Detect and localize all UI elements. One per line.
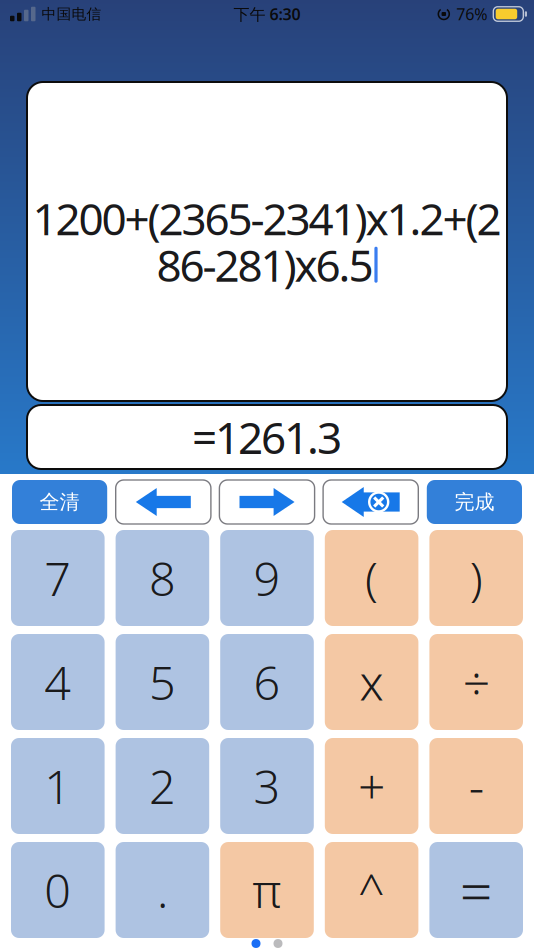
button[interactable]: ÷ bbox=[429, 634, 523, 730]
staticText: =1261.3 bbox=[192, 408, 342, 466]
staticText: 中国电信 bbox=[41, 5, 101, 23]
staticText: 3 bbox=[253, 755, 280, 817]
staticText: ÷ bbox=[463, 650, 490, 714]
button[interactable]: 3 bbox=[220, 738, 314, 834]
button[interactable]: 全清 bbox=[12, 480, 107, 524]
button[interactable]: + bbox=[325, 738, 418, 834]
staticText: 5 bbox=[149, 651, 176, 713]
staticText: 9 bbox=[253, 547, 280, 609]
staticText: 2 bbox=[149, 755, 176, 817]
staticText: 6 bbox=[253, 651, 280, 713]
staticText: ) bbox=[470, 547, 483, 609]
staticText: 7 bbox=[44, 547, 71, 609]
button[interactable]: 6 bbox=[220, 634, 314, 730]
button[interactable]: π bbox=[220, 842, 314, 938]
staticText: 4 bbox=[44, 651, 71, 713]
button[interactable]: 7 bbox=[11, 530, 105, 626]
button[interactable]: 0 bbox=[11, 842, 105, 938]
button[interactable]: 第 1 页 bbox=[251, 939, 260, 948]
button[interactable]: ( bbox=[325, 530, 418, 626]
staticText: ^ bbox=[358, 859, 385, 921]
staticText: . bbox=[157, 859, 168, 921]
button[interactable]: - bbox=[429, 738, 523, 834]
button[interactable]: 左移 bbox=[116, 480, 211, 524]
button[interactable]: x bbox=[325, 634, 418, 730]
button[interactable]: 8 bbox=[116, 530, 209, 626]
staticText: 全清 bbox=[40, 490, 80, 514]
button[interactable]: 右移 bbox=[219, 480, 315, 524]
button[interactable]: 2 bbox=[116, 738, 209, 834]
staticText: 1 bbox=[44, 755, 71, 817]
button[interactable]: ) bbox=[429, 530, 523, 626]
staticText: π bbox=[252, 859, 281, 921]
button[interactable]: = bbox=[429, 842, 523, 938]
staticText: 86-281)x6.5 bbox=[156, 235, 373, 294]
button[interactable]: 1 bbox=[11, 738, 105, 834]
button[interactable]: 4 bbox=[11, 634, 105, 730]
staticText: ( bbox=[365, 547, 378, 609]
button[interactable]: 第 2 页 bbox=[273, 939, 282, 948]
button[interactable]: 完成 bbox=[427, 480, 522, 524]
button[interactable]: ^ bbox=[325, 842, 418, 938]
staticText: 8 bbox=[149, 547, 176, 609]
button[interactable]: 9 bbox=[220, 530, 314, 626]
button[interactable]: . bbox=[116, 842, 209, 938]
staticText: + bbox=[358, 754, 385, 818]
staticText: 1200+(2365-2341)x1.2+(2 bbox=[32, 189, 501, 247]
staticText: - bbox=[469, 754, 484, 818]
staticText: 下午 6:30 bbox=[233, 3, 300, 25]
staticText: 0 bbox=[44, 859, 71, 921]
staticText: x bbox=[360, 650, 384, 714]
staticText: = bbox=[460, 852, 493, 928]
staticText: 76% bbox=[456, 3, 487, 25]
button[interactable]: 5 bbox=[116, 634, 209, 730]
staticText: 完成 bbox=[454, 490, 494, 514]
button[interactable]: 删除 bbox=[323, 480, 418, 524]
